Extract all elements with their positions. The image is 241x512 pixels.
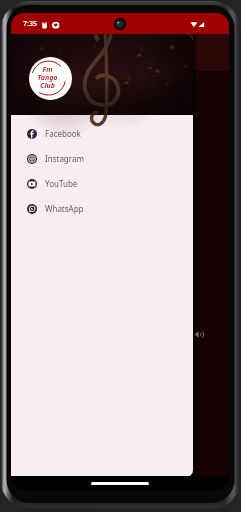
staticText: Instagram <box>45 153 84 164</box>
staticText: 7:35 <box>23 19 37 29</box>
staticText: YouTube <box>45 178 78 189</box>
button[interactable]: Instagram <box>11 146 193 171</box>
button[interactable]: YouTube <box>11 171 193 196</box>
button[interactable]: Facebook <box>11 121 193 146</box>
staticText: Fm Tango Club <box>29 65 69 90</box>
staticText: Facebook <box>45 128 81 139</box>
button[interactable]: WhatsApp <box>11 196 193 221</box>
staticText: WhatsApp <box>45 203 84 214</box>
button[interactable]: Fm Tango Club logo <box>29 57 72 100</box>
